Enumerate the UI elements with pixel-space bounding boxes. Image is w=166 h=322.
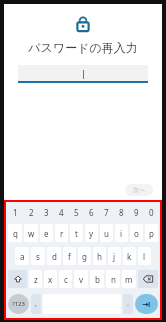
staticText: e [44, 228, 49, 239]
staticText: l [143, 251, 146, 262]
button[interactable]: u [100, 224, 113, 242]
button[interactable]: e [40, 224, 53, 242]
staticText: 次へ [133, 186, 146, 194]
staticText: 8 [119, 207, 124, 218]
staticText: o [134, 228, 139, 239]
staticText: 4 [59, 207, 64, 218]
staticText: j [113, 251, 116, 262]
staticText: x [48, 274, 53, 285]
button[interactable]: 次へ [125, 184, 153, 196]
button[interactable]: h [93, 247, 106, 265]
staticText: d [52, 251, 57, 262]
staticText: s [36, 251, 40, 262]
button[interactable]: l [138, 247, 151, 265]
staticText: 7 [104, 207, 109, 218]
button[interactable]: . [123, 294, 133, 314]
staticText: 0 [149, 207, 154, 218]
button[interactable]: i [115, 224, 128, 242]
staticText: k [127, 251, 132, 262]
button[interactable]: o [130, 224, 143, 242]
staticText: v [79, 274, 84, 285]
button[interactable]: p [145, 224, 158, 242]
staticText: i [120, 228, 123, 239]
staticText: p [149, 228, 154, 239]
staticText: 9 [134, 207, 139, 218]
staticText: b [95, 274, 100, 285]
button[interactable]: t [70, 224, 83, 242]
staticText: w [28, 228, 35, 239]
button[interactable]: q [8, 224, 22, 242]
button[interactable]: , [31, 294, 41, 314]
button[interactable]: v [74, 270, 88, 288]
button[interactable]: f [63, 247, 76, 265]
staticText: r [60, 228, 64, 239]
staticText: y [89, 228, 94, 239]
button[interactable]: c [59, 270, 72, 288]
staticText: 5 [74, 207, 79, 218]
button[interactable]: s [31, 247, 45, 265]
button[interactable]: k [123, 247, 136, 265]
staticText: c [64, 274, 68, 285]
staticText: パスワードの再入力 [18, 40, 148, 55]
button[interactable]: ?123 [8, 294, 29, 314]
staticText: t [75, 228, 78, 239]
button[interactable] [18, 65, 148, 83]
button[interactable]: Delete [138, 270, 158, 288]
staticText: q [13, 228, 18, 239]
button[interactable]: g [78, 247, 91, 265]
button[interactable]: b [90, 270, 104, 288]
staticText: g [82, 251, 87, 262]
staticText: m [125, 274, 133, 285]
button[interactable]: r [55, 224, 68, 242]
button[interactable]: Enter [135, 294, 158, 314]
staticText: , [35, 299, 37, 309]
button[interactable]: a [15, 247, 29, 265]
button[interactable]: j [108, 247, 121, 265]
button[interactable]: m [122, 270, 136, 288]
staticText: 1 [13, 207, 18, 218]
staticText: a [20, 251, 25, 262]
staticText: f [68, 251, 71, 262]
button[interactable]: x [44, 270, 57, 288]
button[interactable]: Shift [8, 270, 27, 288]
staticText: ?123 [12, 300, 25, 308]
staticText: z [34, 274, 38, 285]
button[interactable]: z [29, 270, 42, 288]
button[interactable]: w [24, 224, 38, 242]
staticText: n [111, 274, 116, 285]
staticText: 2 [29, 207, 34, 218]
staticText: h [97, 251, 102, 262]
button[interactable]: d [47, 247, 61, 265]
staticText: 6 [89, 207, 94, 218]
button[interactable]: y [85, 224, 98, 242]
staticText: . [127, 299, 129, 309]
staticText: u [104, 228, 109, 239]
button[interactable]: n [106, 270, 120, 288]
staticText: 3 [44, 207, 49, 218]
